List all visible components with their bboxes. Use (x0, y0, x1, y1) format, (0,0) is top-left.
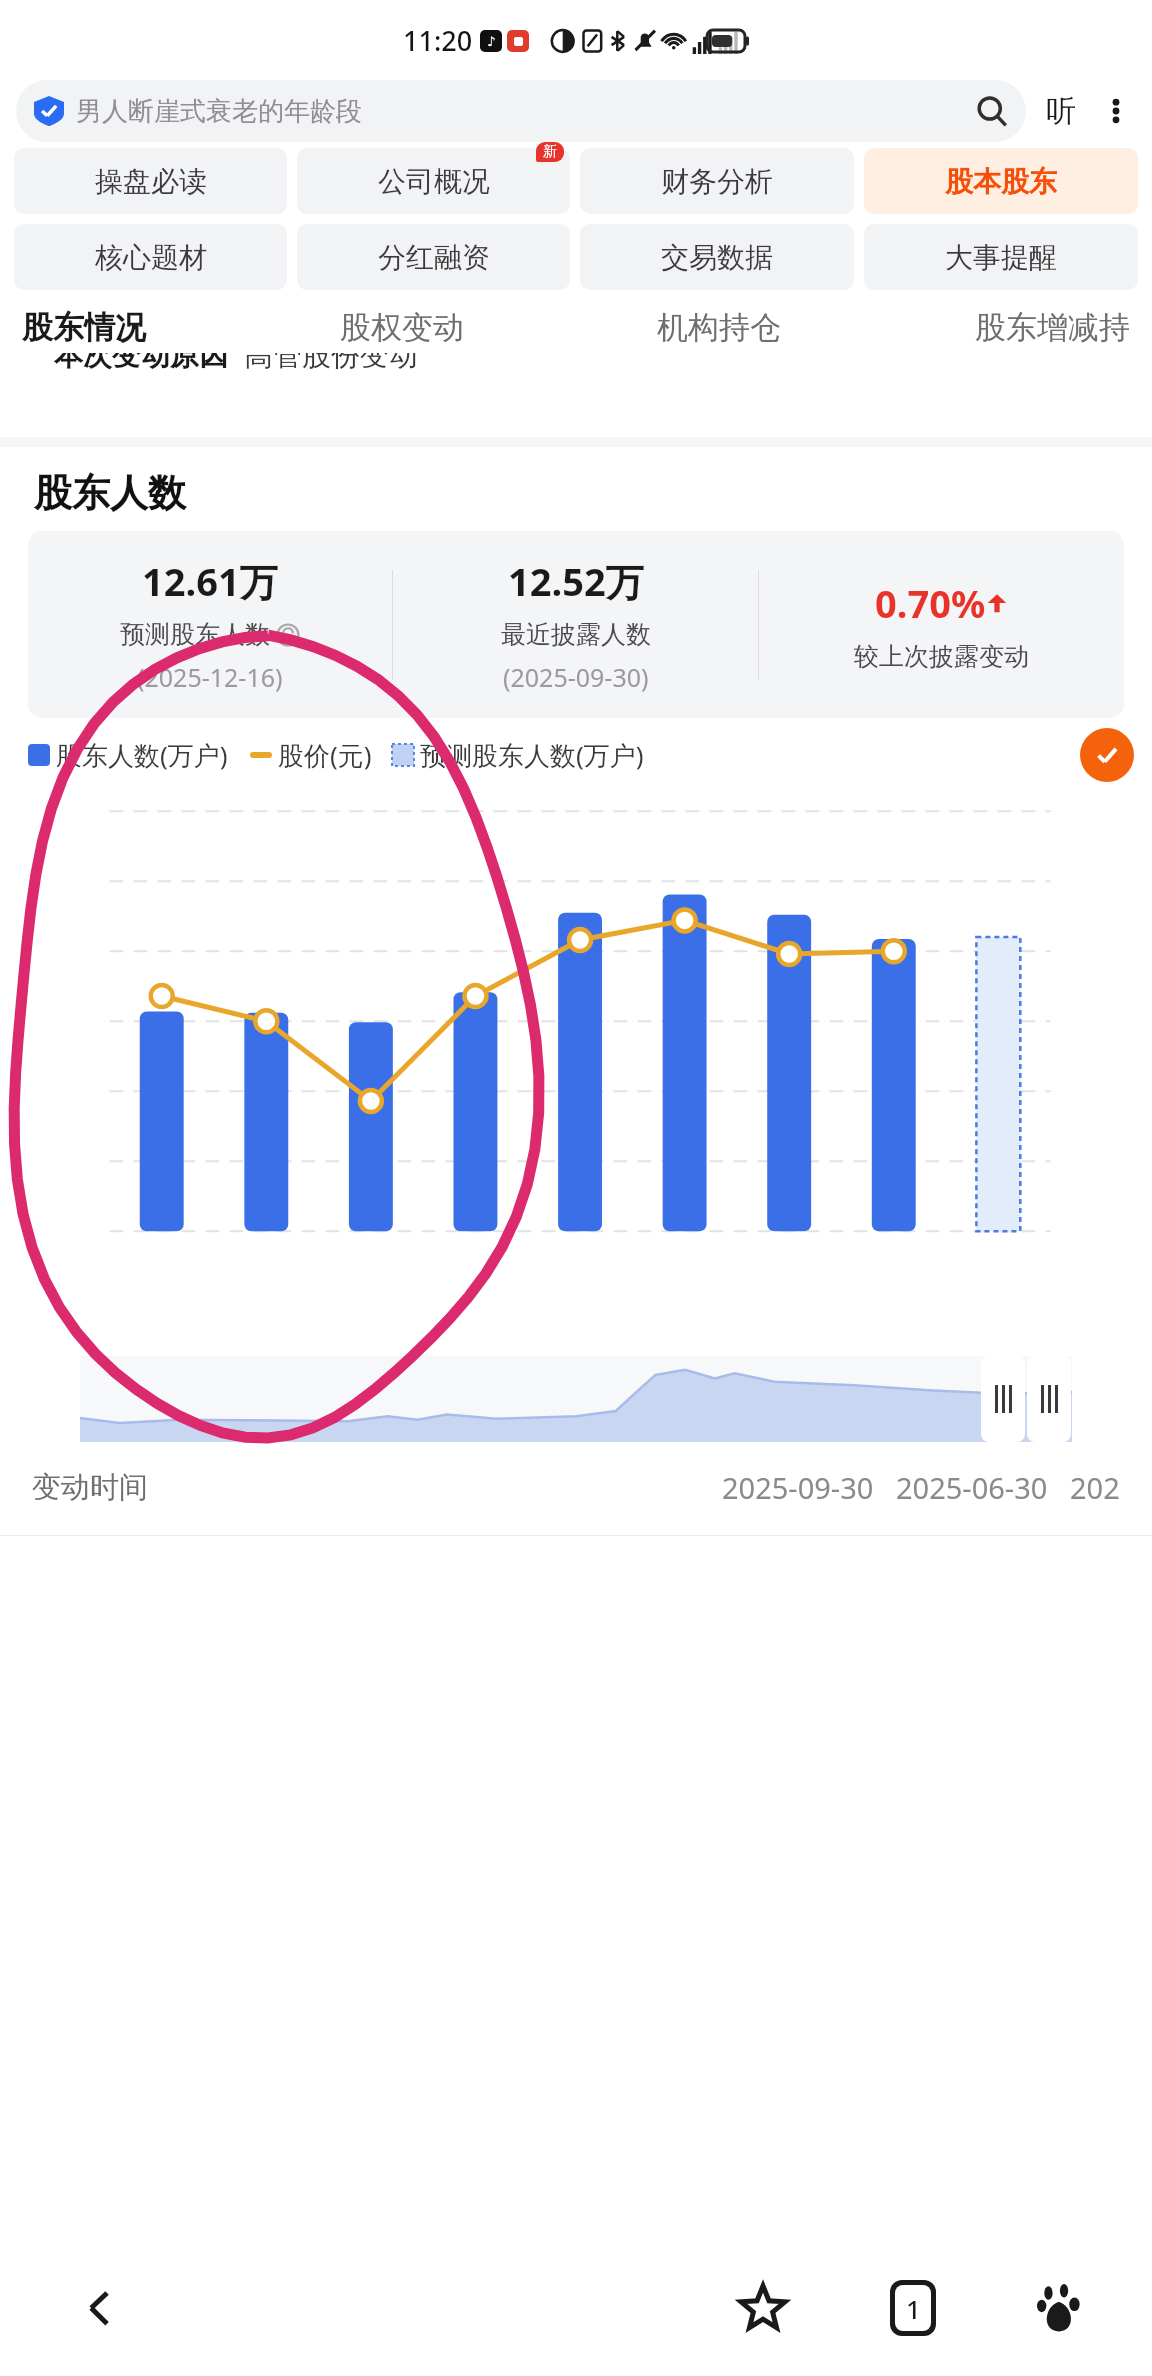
other: Search (976, 95, 1008, 127)
staticText: 股东人数(万户) (56, 737, 228, 773)
other: Help (276, 623, 300, 647)
staticText: (2025-12-16) (137, 660, 283, 694)
staticText: 2025-09-30 (722, 1468, 874, 1507)
button[interactable]: Favorite (708, 2253, 818, 2363)
staticText: 大事提醒 (945, 240, 1057, 275)
button[interactable]: 公司概况 (297, 148, 570, 214)
button[interactable]: Confirm (1080, 728, 1134, 782)
staticText: 男人断崖式衰老的年龄段 (76, 95, 362, 128)
staticText: 新 (543, 143, 557, 161)
staticText: 股东增减持 (975, 308, 1130, 347)
button[interactable]: 机构持仓 (657, 302, 781, 353)
button[interactable]: 12.61万 (28, 531, 1124, 718)
staticText: 202 (1070, 1468, 1120, 1507)
staticText: 听 (1046, 92, 1076, 130)
button[interactable]: 股本股东 (864, 148, 1138, 214)
button[interactable]: 本次变动原因 (26, 353, 1126, 413)
staticText: 机构持仓 (657, 308, 781, 347)
button[interactable]: 股东增减持 (975, 302, 1130, 353)
staticText: (2025-09-30) (503, 660, 649, 694)
staticText: 12.61万 (142, 555, 278, 607)
staticText: 核心题材 (95, 240, 207, 275)
button[interactable]: 大事提醒 (864, 224, 1138, 290)
button[interactable]: 听 (1042, 88, 1080, 134)
staticText: 分红融资 (378, 240, 490, 275)
button[interactable]: 股东情况 (22, 302, 146, 353)
staticText: 预测股东人数 (120, 619, 270, 650)
staticText: 股本股东 (945, 164, 1057, 199)
staticText: 0.70% (875, 577, 986, 629)
staticText: 变动时间 (32, 1469, 148, 1506)
staticText: 股东情况 (22, 308, 146, 347)
staticText: 股权变动 (340, 308, 464, 347)
staticText: 1 (906, 2291, 921, 2326)
staticText: 本次变动原因 (54, 353, 228, 374)
button[interactable]: Tabs (858, 2253, 968, 2363)
staticText: 股东人数 (34, 469, 186, 517)
staticText: 12.52万 (508, 555, 644, 607)
button[interactable]: 男人断崖式衰老的年龄段 (16, 80, 1026, 142)
button[interactable]: Back (0, 2240, 200, 2376)
staticText: 11:20 (403, 22, 473, 59)
staticText: 高管股份变动 (244, 353, 418, 374)
staticText: 预测股东人数(万户) (420, 737, 644, 773)
button[interactable]: 财务分析 (580, 148, 854, 214)
button[interactable]: 分红融资 (297, 224, 570, 290)
staticText: 财务分析 (661, 164, 773, 199)
button[interactable]: More options (1096, 91, 1136, 131)
button[interactable]: Baidu home (1008, 2253, 1118, 2363)
button[interactable]: 股权变动 (340, 302, 464, 353)
staticText: 股价(元) (278, 737, 372, 773)
staticText: ♪ (487, 34, 496, 49)
staticText: 交易数据 (661, 240, 773, 275)
staticText: 公司概况 (378, 164, 490, 199)
button[interactable]: 操盘必读 (14, 148, 287, 214)
button[interactable] (80, 1356, 1072, 1442)
staticText: 最近披露人数 (501, 619, 651, 650)
button[interactable]: 核心题材 (14, 224, 287, 290)
staticText: 较上次披露变动 (854, 641, 1029, 672)
staticText: 操盘必读 (95, 164, 207, 199)
button[interactable]: 交易数据 (580, 224, 854, 290)
staticText: 2025-06-30 (896, 1468, 1048, 1507)
